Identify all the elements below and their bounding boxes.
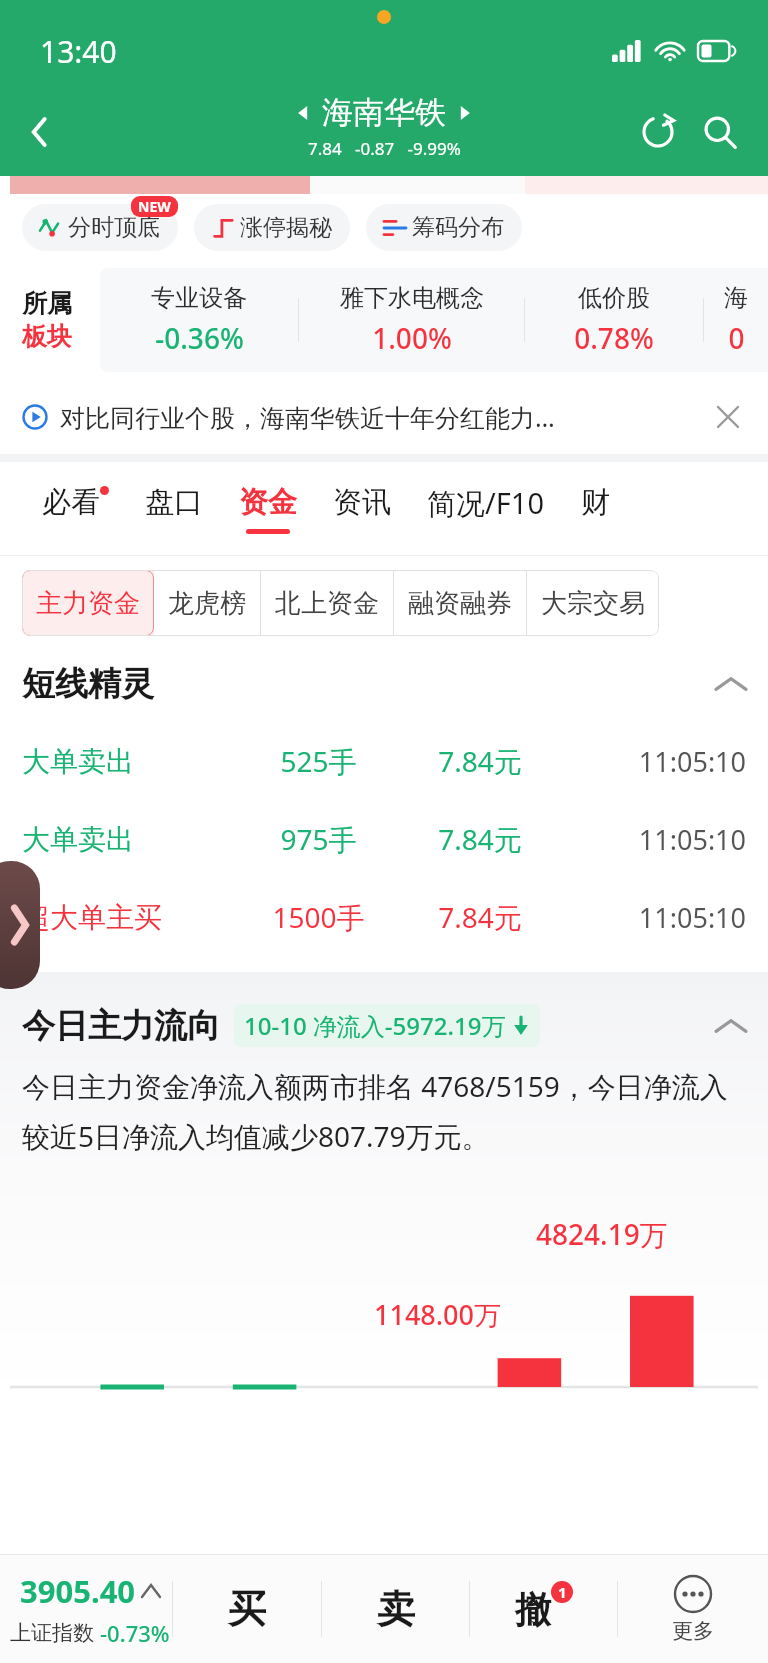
staticText: 财 xyxy=(581,484,610,521)
staticText: 卖 xyxy=(377,1585,415,1633)
staticText: 涨停揭秘 xyxy=(240,213,332,242)
staticText: 1 xyxy=(558,1582,567,1602)
staticText: 大单卖出 xyxy=(22,744,240,779)
staticText: 大单卖出 xyxy=(22,822,240,857)
button[interactable]: 大单卖出 xyxy=(0,722,768,800)
button[interactable]: 卖 xyxy=(322,1555,469,1663)
staticText: 撤 xyxy=(515,1587,551,1632)
button[interactable]: 专业设备 xyxy=(100,268,768,372)
button[interactable]: 融资融券 xyxy=(394,570,526,636)
button[interactable]: Search xyxy=(694,106,746,158)
staticText: 1500手 xyxy=(240,898,397,936)
staticText: 3905.40 xyxy=(20,1570,136,1612)
button[interactable]: 大单卖出 xyxy=(0,800,768,878)
button[interactable]: 主力资金 xyxy=(22,570,154,636)
staticText: -0.73% xyxy=(100,1618,170,1648)
staticText: 超大单主买 xyxy=(22,900,240,935)
button[interactable]: 撤 xyxy=(470,1555,617,1663)
staticText: 7.84元 xyxy=(397,742,563,780)
staticText: 龙虎榜 xyxy=(168,587,246,620)
button[interactable]: Expand panel xyxy=(0,861,40,989)
staticText: -0.36% xyxy=(155,319,244,357)
staticText: 主力资金 xyxy=(36,587,140,620)
button[interactable]: 分时顶底 xyxy=(22,204,178,251)
button[interactable]: 资金 xyxy=(221,462,315,556)
staticText: 海南华铁 xyxy=(322,93,446,132)
button[interactable]: Close xyxy=(710,399,746,435)
staticText: 资金 xyxy=(239,484,297,521)
staticText: 0 xyxy=(728,319,745,357)
staticText: 板块 xyxy=(22,321,72,352)
staticText: 大宗交易 xyxy=(541,587,645,620)
button[interactable]: 3905.40 xyxy=(0,1570,172,1648)
staticText: 0.78% xyxy=(574,319,654,357)
button[interactable]: 财 xyxy=(563,462,628,556)
staticText: NEW xyxy=(138,197,171,216)
staticText: 今日主力流向 xyxy=(22,1005,220,1047)
staticText: 盘口 xyxy=(145,484,203,521)
staticText: 1.00% xyxy=(372,319,452,357)
button[interactable]: 今日主力流向 xyxy=(0,1004,768,1047)
staticText: 11:05:10 xyxy=(563,821,746,858)
staticText: 4824.19万 xyxy=(536,1215,668,1253)
button[interactable]: 筹码分布 xyxy=(366,204,522,251)
staticText: 975手 xyxy=(240,820,397,858)
button[interactable]: 涨停揭秘 xyxy=(194,204,350,251)
button[interactable]: 资讯 xyxy=(315,462,409,556)
button[interactable]: 买 xyxy=(173,1555,321,1663)
button[interactable]: Refresh xyxy=(632,106,684,158)
staticText: 7.84 -0.87 -9.99% xyxy=(308,137,461,160)
staticText: 简况/F10 xyxy=(427,483,545,523)
button[interactable]: 龙虎榜 xyxy=(154,570,260,636)
staticText: 北上资金 xyxy=(275,587,379,620)
button[interactable]: 简况/F10 xyxy=(409,462,563,556)
staticText: 雅下水电概念 xyxy=(340,283,484,313)
staticText: 资讯 xyxy=(333,484,391,521)
staticText: 1148.00万 xyxy=(374,1296,502,1333)
staticText: 10-10 净流入-5972.19万 xyxy=(244,1009,506,1042)
button[interactable]: 对比同行业个股，海南华铁近十年分红能力… xyxy=(0,386,768,448)
staticText: 13:40 xyxy=(40,31,117,72)
staticText: 筹码分布 xyxy=(412,213,504,242)
button[interactable]: 北上资金 xyxy=(261,570,393,636)
staticText: 买 xyxy=(228,1585,266,1633)
staticText: 对比同行业个股，海南华铁近十年分红能力… xyxy=(60,400,710,434)
staticText: 低价股 xyxy=(578,283,650,313)
staticText: 海 xyxy=(724,283,748,313)
staticText: 7.84元 xyxy=(397,820,563,858)
staticText: 今日主力资金净流入额两市排名 4768/5159，今日净流入较近5日净流入均值减… xyxy=(22,1067,746,1155)
staticText: 11:05:10 xyxy=(563,743,746,780)
staticText: 必看 xyxy=(42,484,100,521)
button[interactable]: 必看 xyxy=(24,462,127,556)
staticText: 11:05:10 xyxy=(563,899,746,936)
staticText: 融资融券 xyxy=(408,587,512,620)
staticText: 上证指数 xyxy=(10,1620,94,1646)
button[interactable]: 短线精灵 xyxy=(0,652,768,716)
staticText: 7.84元 xyxy=(397,898,563,936)
staticText: 专业设备 xyxy=(151,283,247,313)
staticText: 所属 xyxy=(22,288,72,319)
staticText: 更多 xyxy=(672,1618,714,1644)
staticText: 525手 xyxy=(240,742,397,780)
button[interactable]: 大宗交易 xyxy=(527,570,659,636)
button[interactable]: 超大单主买 xyxy=(0,878,768,956)
button[interactable]: Back xyxy=(12,104,68,160)
button[interactable]: 盘口 xyxy=(127,462,221,556)
button[interactable]: 更多 xyxy=(618,1555,768,1663)
staticText: 短线精灵 xyxy=(22,663,154,705)
staticText: 分时顶底 xyxy=(68,213,160,242)
